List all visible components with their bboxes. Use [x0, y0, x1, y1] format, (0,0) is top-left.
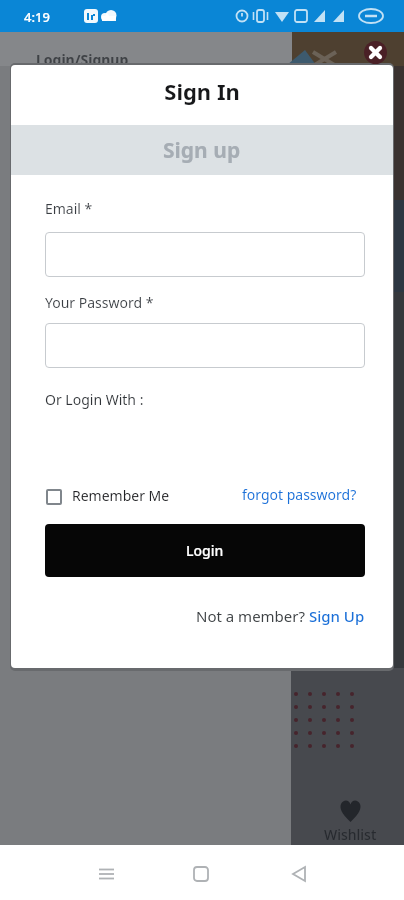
button[interactable]: Login [45, 524, 365, 577]
button[interactable] [46, 489, 62, 505]
staticText: Sign In [11, 76, 393, 106]
staticText: forgot password? [242, 485, 357, 504]
button[interactable] [45, 232, 365, 277]
staticText: Login/Signup [36, 50, 129, 69]
button[interactable] [285, 860, 315, 886]
staticText: Email * [45, 199, 93, 218]
button[interactable] [92, 860, 122, 886]
button[interactable]: Not a member? Sign Up [45, 606, 365, 626]
staticText: Not a member? Sign Up [196, 606, 365, 626]
staticText: Sign up [163, 136, 241, 165]
staticText: Your Password * [45, 293, 154, 312]
staticText: 4:19 [24, 8, 50, 26]
staticText: Wishlist [324, 825, 377, 844]
staticText: Remember Me [72, 486, 170, 505]
button[interactable] [364, 41, 387, 64]
staticText: Or Login With : [45, 390, 144, 409]
button[interactable] [45, 323, 365, 368]
button[interactable] [187, 860, 217, 886]
button[interactable]: forgot password? [45, 485, 357, 504]
button[interactable]: Sign up [11, 125, 393, 175]
staticText: Login [186, 541, 224, 560]
